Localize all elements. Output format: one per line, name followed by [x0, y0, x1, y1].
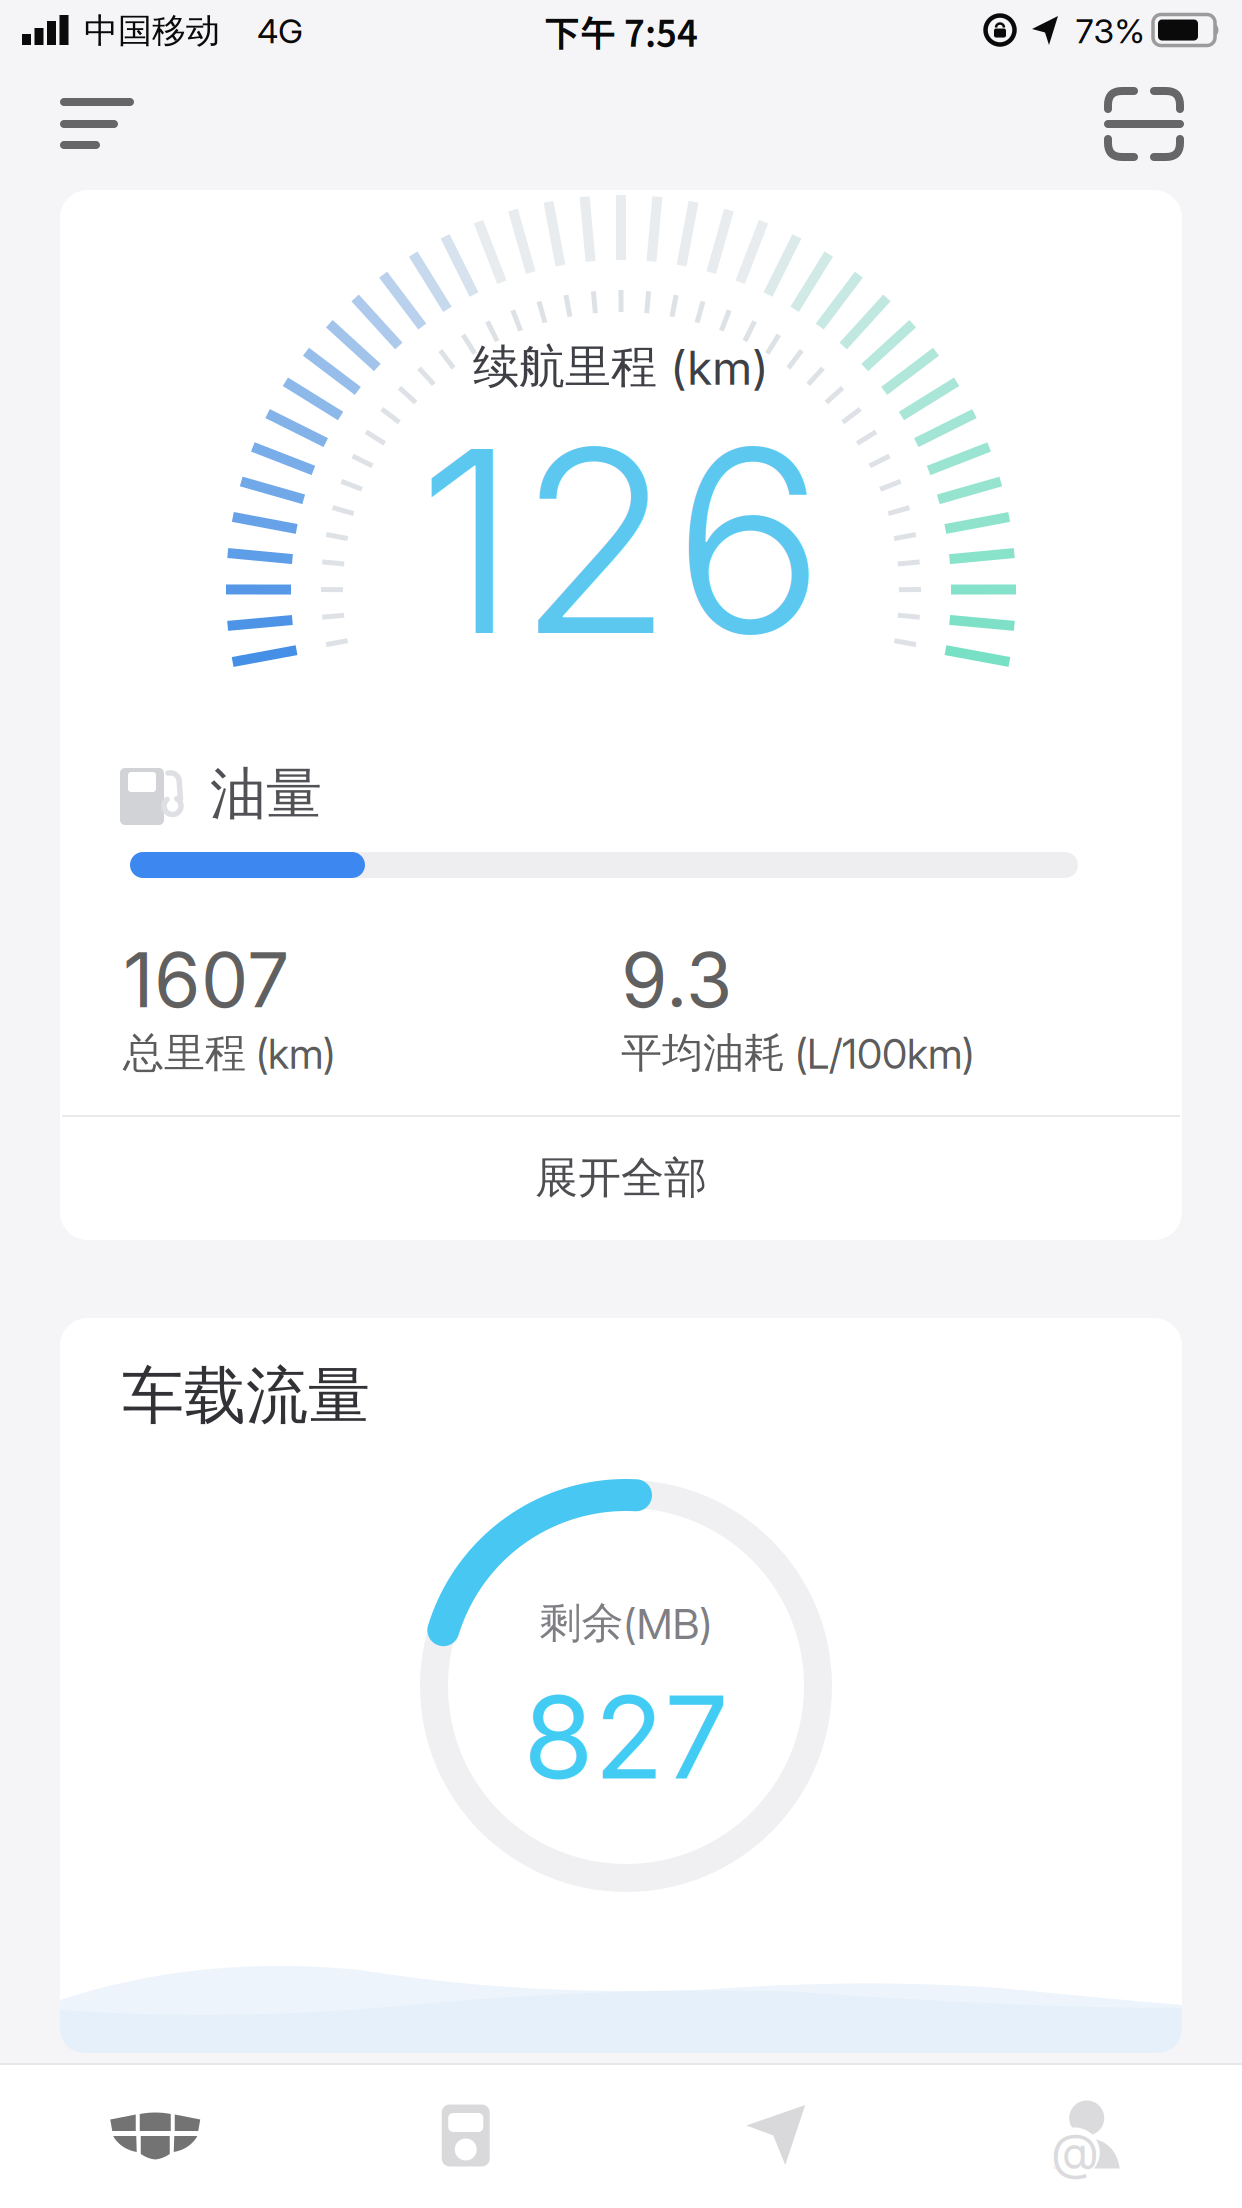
staticText: 下午 7:54: [544, 5, 698, 57]
staticText: @: [1051, 2121, 1099, 2182]
button[interactable]: 车辆: [0, 2063, 310, 2208]
staticText: 车载流量: [122, 1357, 370, 1435]
staticText: 油量: [210, 759, 322, 829]
staticText: 4G: [257, 10, 303, 51]
staticText: 1607: [123, 935, 289, 1025]
button[interactable]: 菜单: [38, 74, 158, 174]
staticText: 73%: [1075, 10, 1144, 51]
staticText: 总里程 (km): [123, 1027, 335, 1079]
staticText: 9.3: [621, 935, 732, 1025]
staticText: 平均油耗 (L/100km): [621, 1027, 974, 1079]
staticText: 126: [417, 388, 824, 694]
button[interactable]: 我的: [932, 2063, 1242, 2208]
staticText: 展开全部: [535, 1151, 707, 1205]
button[interactable]: 充电: [311, 2063, 621, 2208]
button[interactable]: 展开全部: [60, 1117, 1182, 1239]
staticText: 827: [523, 1668, 729, 1806]
button[interactable]: 位置: [621, 2063, 931, 2208]
button[interactable]: 扫一扫: [1084, 74, 1204, 174]
staticText: 中国移动: [84, 10, 220, 52]
staticText: 剩余(MB): [539, 1596, 712, 1649]
staticText: 续航里程 (km): [473, 338, 769, 396]
